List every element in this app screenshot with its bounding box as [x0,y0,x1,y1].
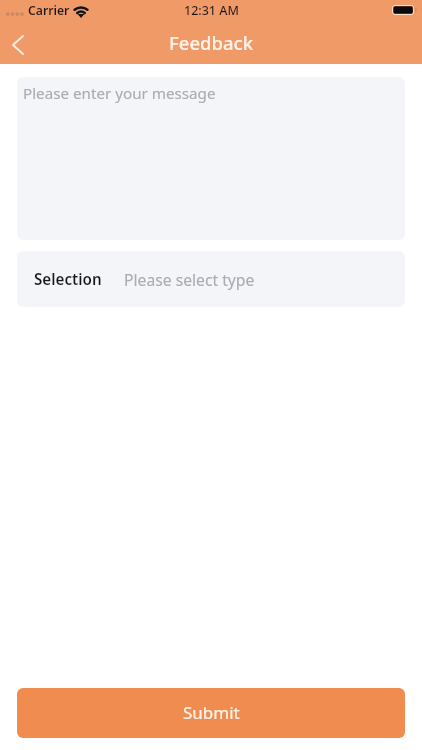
button[interactable]: Submit [17,688,405,738]
staticText: Selection [34,269,102,290]
staticText: Feedback [169,30,253,55]
staticText: Please enter your message [23,83,216,104]
button[interactable]: Back [0,24,40,64]
staticText: Carrier [28,2,70,19]
button[interactable]: Selection [17,251,405,307]
staticText: Please select type [124,269,255,290]
button[interactable]: Please enter your message [17,77,405,240]
staticText: 12:31 AM [184,2,239,19]
staticText: Submit [183,701,240,724]
